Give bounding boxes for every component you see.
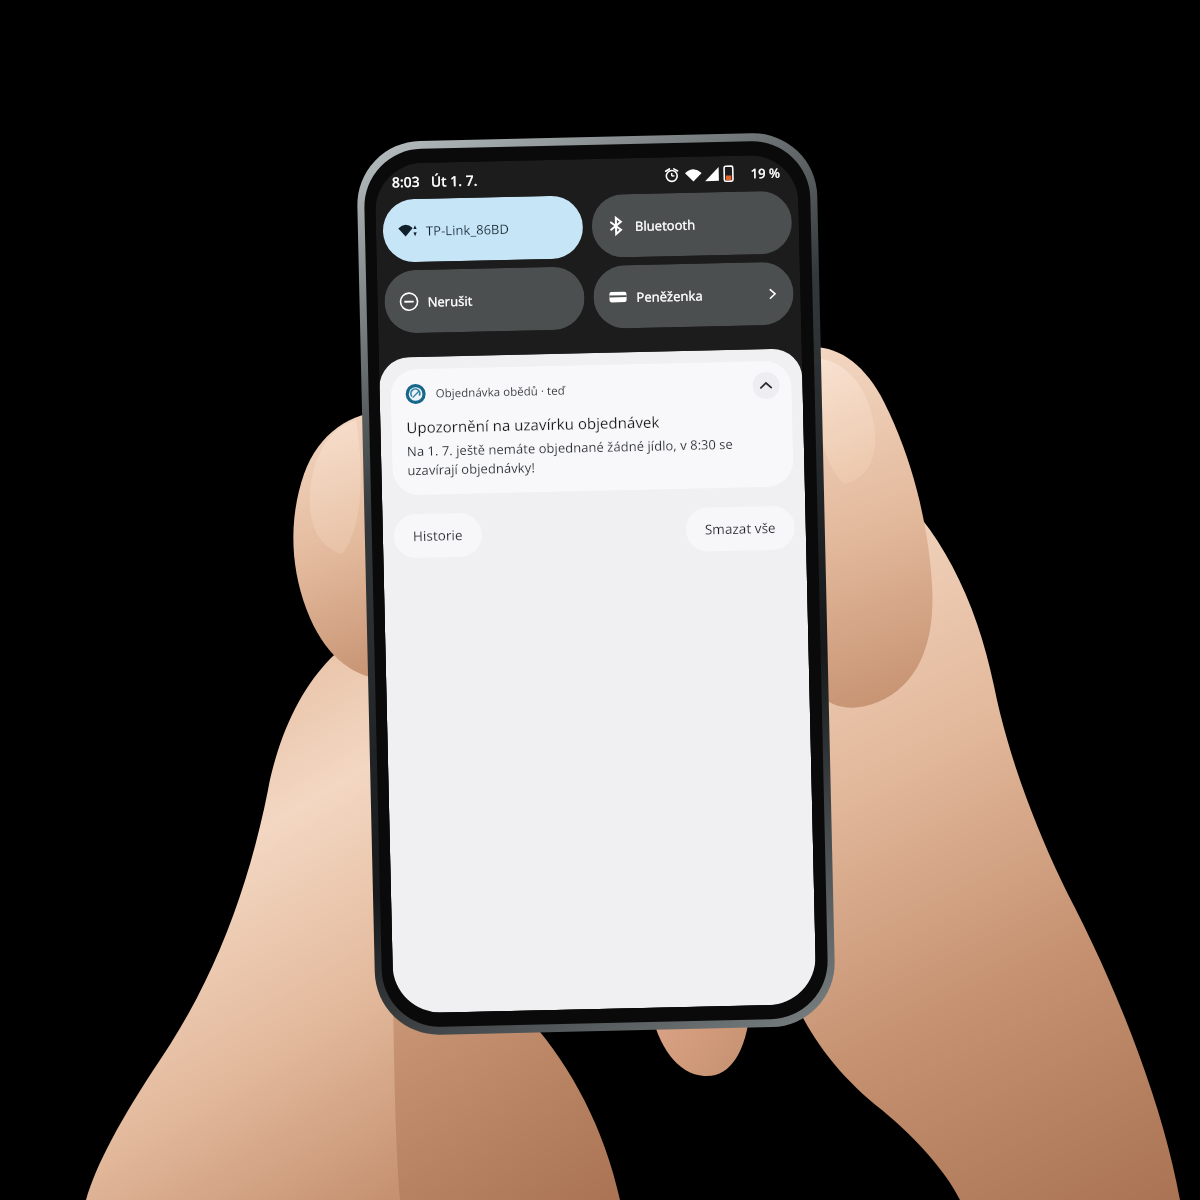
staticText: Peněženka [636, 286, 704, 306]
staticText: 8:03 [392, 172, 420, 191]
staticText: Historie [413, 526, 463, 545]
staticText: Smazat vše [705, 519, 776, 538]
button[interactable]: Peněženka [593, 261, 794, 329]
button[interactable]: Nerušit [384, 266, 585, 334]
button[interactable]: Smazat vše [685, 505, 795, 552]
staticText: Út 1. 7. [431, 171, 478, 191]
button[interactable]: Objednávka obědů · teď [390, 360, 794, 496]
staticText: Objednávka obědů · teď [435, 383, 566, 401]
staticText: 19 % [750, 164, 781, 182]
button[interactable]: Bluetooth [591, 190, 793, 258]
staticText: Nerušit [427, 292, 473, 311]
button[interactable]: Historie [393, 513, 482, 559]
button[interactable]: TP-Link_86BD [382, 195, 584, 263]
staticText: Bluetooth [635, 216, 696, 235]
staticText: Upozornění na uzavírku objednávek [406, 411, 661, 437]
staticText: TP-Link_86BD [426, 220, 510, 240]
staticText: Na 1. 7. ještě nemáte objednané žádné jí… [407, 434, 781, 479]
button[interactable]: Sbalit oznámení [752, 372, 780, 399]
